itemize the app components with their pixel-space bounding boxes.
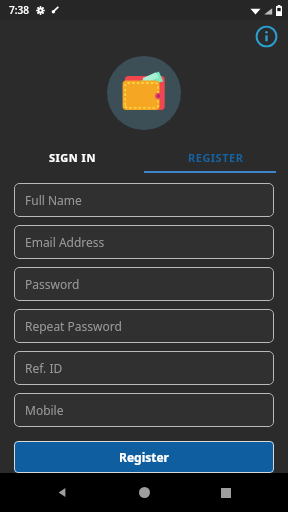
staticText: Full Name: [25, 192, 82, 208]
staticText: Ref. ID: [25, 360, 63, 376]
staticText: REGISTER: [188, 150, 244, 165]
button[interactable]: Ref. ID: [14, 351, 274, 385]
button[interactable]: SIGN IN: [0, 146, 144, 168]
button[interactable]: Back: [42, 473, 82, 512]
button[interactable]: Home: [124, 473, 164, 512]
button[interactable]: Register: [14, 441, 274, 473]
staticText: Repeat Password: [25, 318, 122, 334]
button[interactable]: Mobile: [14, 393, 274, 427]
staticText: Password: [25, 276, 80, 292]
staticText: Register: [119, 449, 169, 465]
button[interactable]: Information: [253, 23, 279, 49]
button[interactable]: Recent apps: [206, 473, 246, 512]
button[interactable]: Full Name: [14, 183, 274, 217]
staticText: Email Address: [25, 234, 105, 250]
staticText: SIGN IN: [49, 150, 96, 165]
button[interactable]: Email Address: [14, 225, 274, 259]
button[interactable]: Password: [14, 267, 274, 301]
staticText: Mobile: [25, 402, 64, 418]
button[interactable]: REGISTER: [144, 146, 288, 168]
staticText: 7:38: [9, 3, 29, 17]
button[interactable]: Repeat Password: [14, 309, 274, 343]
